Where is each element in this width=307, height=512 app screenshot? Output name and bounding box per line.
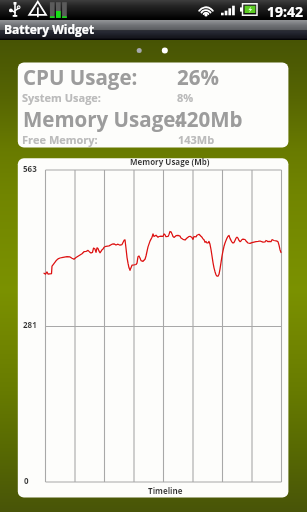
staticText: 26%	[177, 63, 219, 91]
staticText: 281	[23, 319, 37, 330]
staticText: Memory Usage (Mb)	[130, 156, 210, 167]
staticText: Free Memory:	[22, 132, 98, 147]
staticText: 420Mb	[175, 105, 243, 133]
staticText: 143Mb	[178, 132, 215, 147]
staticText: System Usage:	[22, 90, 101, 105]
staticText: 8%	[177, 90, 194, 105]
staticText: 0	[24, 475, 29, 486]
staticText: CPU Usage:	[23, 63, 138, 91]
staticText: 19:42	[267, 2, 304, 21]
staticText: Timeline	[148, 485, 183, 496]
staticText: Memory Usage:	[23, 105, 182, 133]
staticText: Battery Widget	[4, 21, 95, 37]
staticText: 563	[23, 163, 37, 174]
